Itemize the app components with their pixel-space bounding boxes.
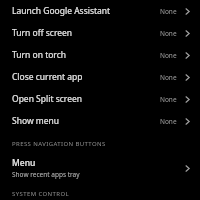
staticText: PRESS NAVIGATION BUTTONS <box>12 140 106 148</box>
staticText: Close current app <box>12 71 160 83</box>
staticText: Open Split screen <box>12 93 160 105</box>
staticText: Turn off screen <box>12 27 160 39</box>
button[interactable]: Launch Google Assistant <box>0 0 200 22</box>
staticText: Show menu <box>12 115 160 127</box>
button[interactable]: Turn off screen <box>0 22 200 44</box>
staticText: None <box>160 95 177 104</box>
staticText: Launch Google Assistant <box>12 5 160 17</box>
staticText: None <box>160 117 177 126</box>
button[interactable]: Close current app <box>0 66 200 88</box>
staticText: None <box>160 7 177 16</box>
staticText: SYSTEM CONTROL <box>12 190 70 198</box>
staticText: None <box>160 73 177 82</box>
staticText: Show recent apps tray <box>12 170 80 179</box>
staticText: None <box>160 51 177 60</box>
button[interactable]: Turn on torch <box>0 44 200 66</box>
button[interactable]: Menu <box>0 154 200 182</box>
button[interactable]: Open Split screen <box>0 88 200 110</box>
staticText: Menu <box>12 157 36 169</box>
staticText: Turn on torch <box>12 49 160 61</box>
button[interactable]: Show menu <box>0 110 200 132</box>
staticText: None <box>160 29 177 38</box>
